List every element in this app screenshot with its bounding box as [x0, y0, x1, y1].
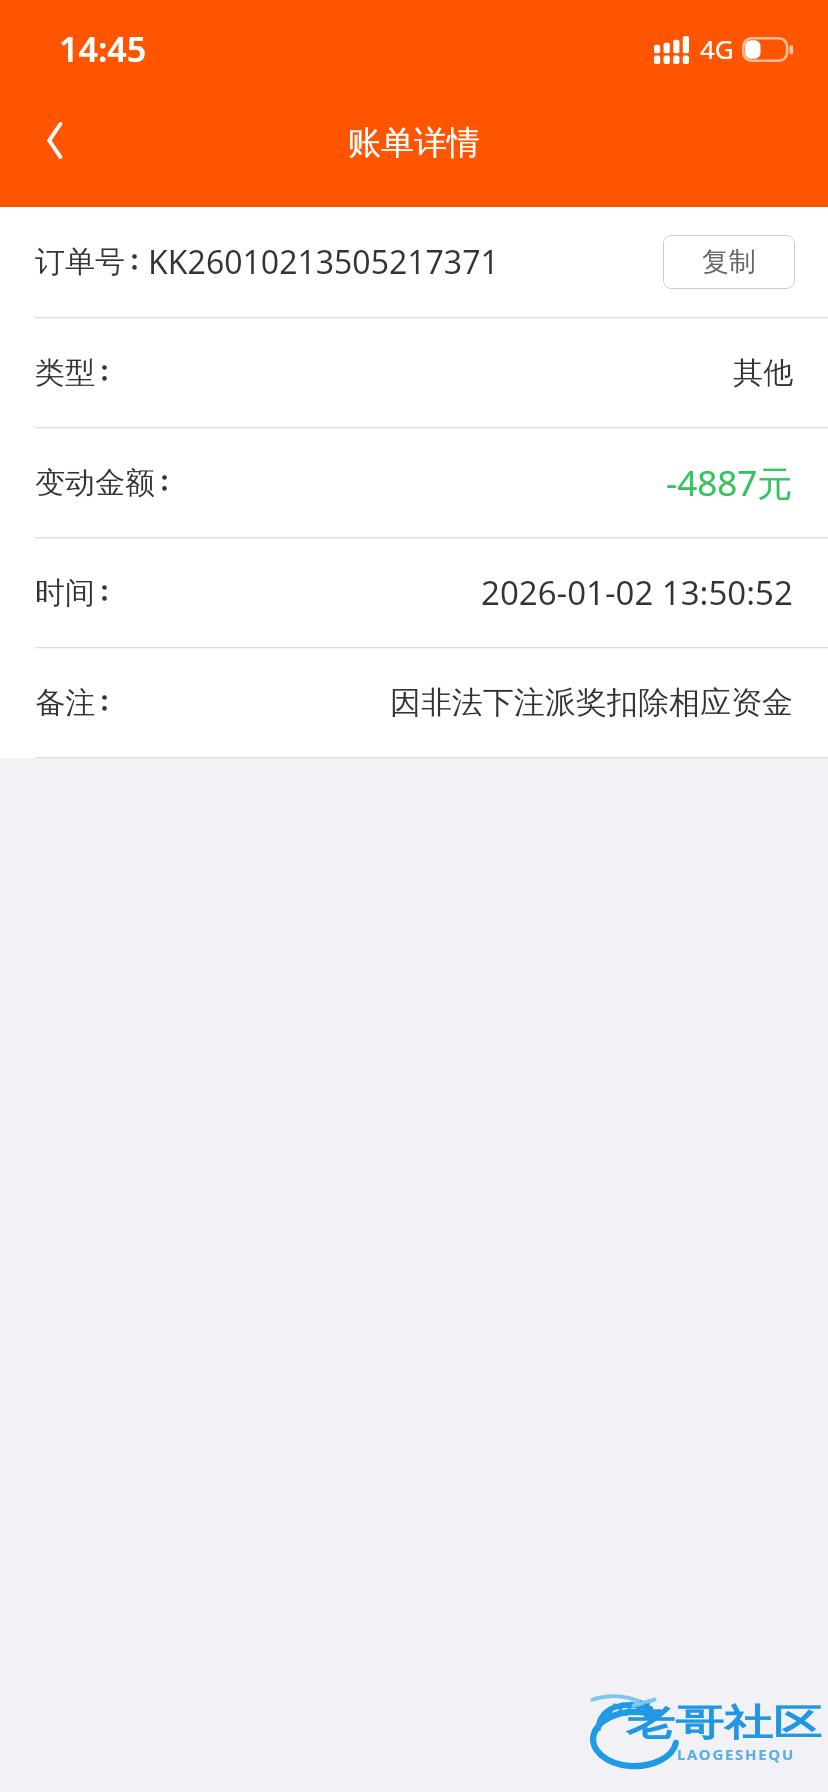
staticText: KK26010213505217371 [148, 240, 499, 284]
staticText: 14:45 [59, 26, 147, 72]
button[interactable]: Back [11, 96, 99, 184]
staticText: 备注 [35, 684, 95, 722]
button[interactable]: 复制 [663, 235, 795, 289]
staticText: 其他 [733, 354, 793, 392]
staticText: 2026-01-02 13:50:52 [481, 570, 793, 615]
staticText: LAOGESHEQU [677, 1744, 795, 1764]
staticText: 类型 [35, 354, 95, 392]
staticText: 因非法下注派奖扣除相应资金 [390, 683, 793, 722]
staticText: -4887元 [666, 459, 793, 507]
staticText: 账单详情 [348, 122, 480, 164]
staticText: 4G [700, 31, 734, 66]
staticText: 时间 [35, 574, 95, 612]
staticText: 订单号 [35, 243, 125, 281]
staticText: 变动金额 [35, 464, 155, 502]
staticText: 老哥社区 [626, 1700, 822, 1746]
staticText: 复制 [702, 245, 756, 279]
